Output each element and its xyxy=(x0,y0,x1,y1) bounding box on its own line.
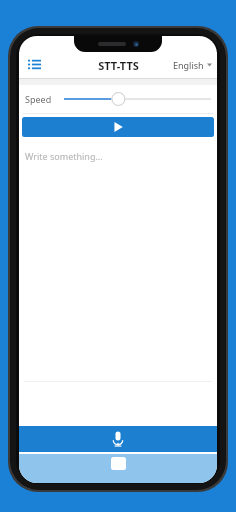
button[interactable]: Speed slider xyxy=(64,89,211,109)
staticText: Speed xyxy=(25,93,52,105)
button[interactable]: Write something... xyxy=(19,147,217,381)
staticText: STT-TTS xyxy=(98,58,139,73)
button[interactable]: Start speech recognition xyxy=(19,426,217,452)
staticText: Write something... xyxy=(25,150,103,162)
button[interactable]: Play text to speech xyxy=(22,117,214,137)
button[interactable]: English xyxy=(171,56,214,74)
button[interactable]: Open navigation menu xyxy=(23,54,45,76)
button[interactable]: Stop xyxy=(111,457,126,470)
staticText: English xyxy=(173,59,204,71)
